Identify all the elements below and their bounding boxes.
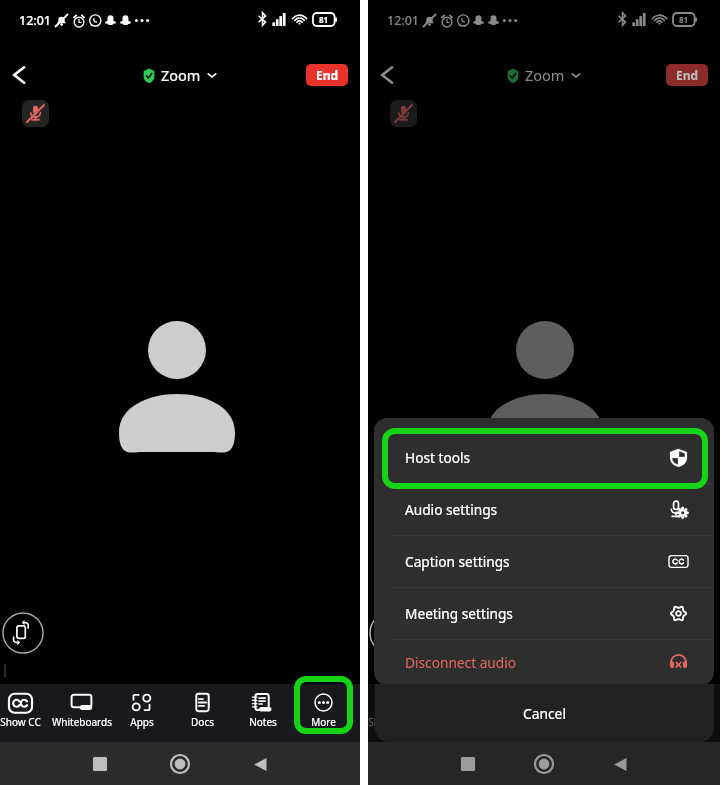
staticText: Whiteboards (52, 715, 112, 729)
button[interactable]: Recents (452, 748, 484, 780)
staticText: Host tools (405, 448, 471, 467)
staticText: Caption settings (405, 552, 510, 571)
button[interactable]: Whiteboards (51, 684, 112, 742)
staticText: Notes (249, 715, 277, 729)
button[interactable]: Meeting settings (374, 588, 714, 639)
staticText: More (311, 715, 336, 729)
staticText: Disconnect audio (405, 653, 517, 672)
button[interactable]: Switch camera (1, 611, 45, 655)
button[interactable]: Caption settings (374, 536, 714, 587)
button[interactable]: Audio settings (374, 484, 714, 535)
staticText: End (676, 67, 699, 83)
staticText: Apps (130, 715, 154, 729)
staticText: Show CC (368, 715, 409, 729)
button[interactable]: Back (604, 748, 636, 780)
button[interactable]: Notes (232, 684, 293, 742)
button[interactable]: Home (164, 748, 196, 780)
staticText: 12:01 (19, 12, 52, 29)
button[interactable]: Show CC (0, 684, 51, 742)
staticText: Cancel (523, 704, 566, 723)
button[interactable]: Home (528, 748, 560, 780)
staticText: Docs (191, 715, 214, 729)
staticText: Meeting settings (405, 604, 513, 623)
button[interactable]: End (306, 64, 348, 86)
button[interactable]: Apps (111, 684, 172, 742)
button[interactable]: Host tools (374, 432, 714, 483)
button[interactable]: Unmute (22, 100, 49, 127)
button[interactable]: Zoom (143, 65, 217, 85)
button[interactable]: Back (3, 59, 35, 91)
staticText: Zoom (525, 65, 565, 85)
button[interactable]: Back (244, 748, 276, 780)
button[interactable]: Disconnect audio (374, 640, 714, 685)
staticText: 81 (319, 14, 329, 25)
button[interactable]: Recents (84, 748, 116, 780)
button[interactable]: Cancel (375, 684, 714, 742)
staticText: Audio settings (405, 500, 498, 519)
button[interactable]: More (293, 684, 354, 742)
button[interactable]: End (666, 64, 708, 86)
staticText: Show CC (0, 715, 41, 729)
staticText: 12:01 (387, 12, 420, 29)
button[interactable]: Back (371, 59, 403, 91)
button[interactable]: Docs (172, 684, 233, 742)
staticText: End (316, 67, 339, 83)
button[interactable]: Zoom (507, 65, 581, 85)
staticText: Zoom (161, 65, 201, 85)
staticText: 81 (679, 14, 689, 25)
